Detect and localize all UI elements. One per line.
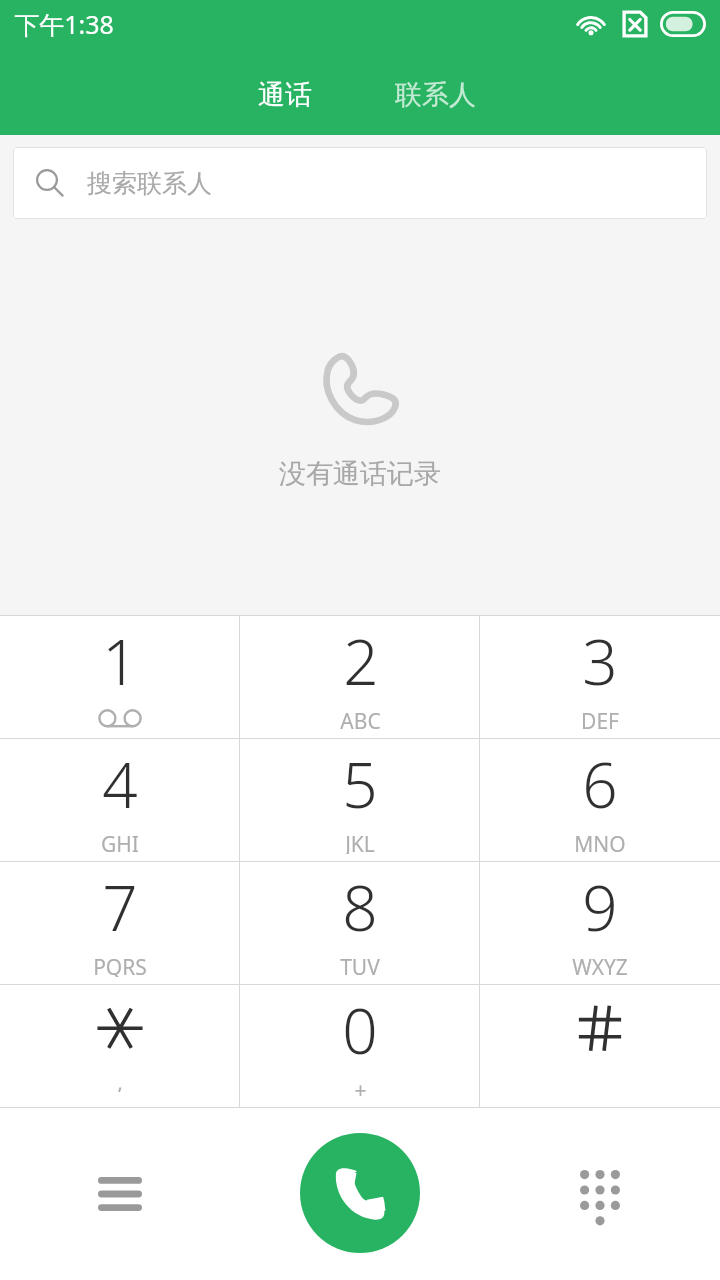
button[interactable]: Dialpad (480, 1108, 720, 1280)
staticText: WXYZ (572, 953, 628, 977)
staticText: 搜索联系人 (87, 168, 212, 199)
button[interactable]: 2 (240, 616, 480, 738)
staticText: 9 (582, 865, 618, 949)
staticText: 4 (102, 742, 138, 826)
staticText: , (117, 1068, 123, 1092)
staticText: 2 (343, 619, 379, 703)
staticText: PQRS (93, 953, 147, 977)
staticText: 1 (102, 619, 138, 703)
staticText: DEF (581, 707, 619, 731)
button[interactable]: 4 (0, 739, 240, 861)
button[interactable]: 3 (480, 616, 720, 738)
button[interactable]: 1 (0, 616, 240, 738)
button[interactable]: 6 (480, 739, 720, 861)
staticText: 没有通话记录 (279, 457, 441, 491)
button[interactable]: Menu (0, 1108, 240, 1280)
staticText: JKL (345, 830, 375, 854)
staticText: ABC (340, 707, 381, 731)
button[interactable] (480, 985, 720, 1107)
button[interactable]: , (0, 985, 240, 1107)
staticText: 5 (342, 742, 378, 826)
staticText: 3 (582, 619, 618, 703)
button[interactable]: 0 (240, 985, 480, 1107)
staticText: + (354, 1076, 367, 1100)
staticText: 8 (342, 865, 378, 949)
button[interactable]: 搜索联系人 (13, 147, 707, 219)
staticText: MNO (574, 830, 626, 854)
button[interactable]: 通话 (210, 55, 360, 135)
staticText: GHI (101, 830, 139, 854)
staticText: 下午1:38 (14, 7, 114, 41)
button[interactable]: 7 (0, 862, 240, 984)
staticText: TUV (340, 953, 380, 977)
button[interactable]: Call (300, 1133, 420, 1253)
button[interactable]: 9 (480, 862, 720, 984)
staticText: 0 (342, 988, 378, 1072)
button[interactable]: 8 (240, 862, 480, 984)
staticText: 联系人 (395, 78, 476, 112)
staticText: 7 (102, 865, 138, 949)
button[interactable]: 联系人 (360, 55, 510, 135)
staticText: 通话 (258, 78, 312, 112)
staticText: 6 (582, 742, 618, 826)
button[interactable]: 5 (240, 739, 480, 861)
